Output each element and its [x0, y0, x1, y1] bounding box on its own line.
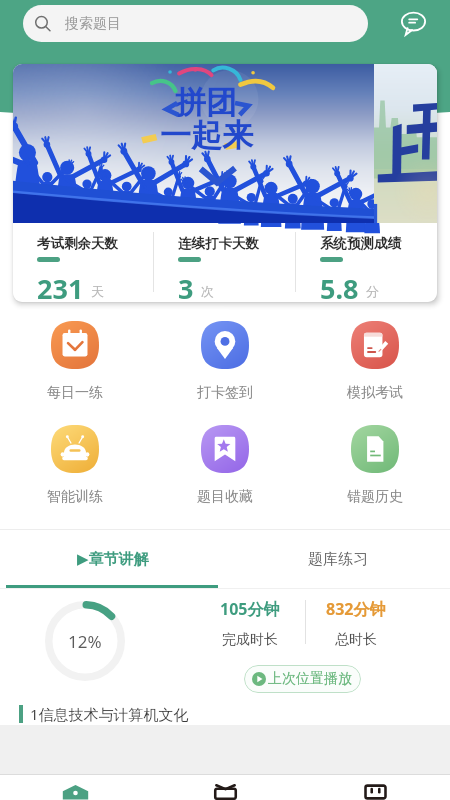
staticText: 次: [201, 283, 214, 299]
staticText: 考试剩余天数: [37, 235, 118, 252]
button[interactable]: 考试剩余天数: [13, 223, 153, 302]
staticText: 5.8: [320, 270, 359, 302]
button[interactable]: 智能训练: [0, 425, 150, 506]
button[interactable]: 1信息技术与计算机文化: [10, 703, 440, 725]
staticText: 题库练习: [308, 550, 368, 569]
button[interactable]: Courses: [150, 775, 300, 800]
button[interactable]: Profile: [300, 775, 450, 800]
button[interactable]: ▶章节讲解: [0, 530, 225, 588]
staticText: 题目收藏: [197, 488, 253, 506]
button[interactable]: 题库练习: [225, 530, 450, 588]
staticText: 总时长: [335, 631, 377, 649]
staticText: 3: [178, 270, 194, 302]
button[interactable]: 错题历史: [300, 425, 450, 506]
button[interactable]: 连续打卡天数: [154, 223, 295, 302]
staticText: 完成时长: [222, 631, 278, 649]
staticText: 231: [37, 270, 84, 302]
button[interactable]: Home: [0, 775, 150, 800]
staticText: 拼团: [175, 83, 237, 122]
staticText: 105分钟: [220, 598, 280, 620]
staticText: 智能训练: [47, 488, 103, 506]
staticText: 一起来: [160, 116, 253, 155]
button[interactable]: Messages: [398, 8, 428, 38]
button[interactable]: 打卡签到: [150, 321, 300, 402]
button[interactable]: 搜索题目: [23, 5, 368, 42]
staticText: 天: [91, 283, 104, 299]
button[interactable]: 上次位置播放: [244, 665, 361, 693]
staticText: 832分钟: [326, 598, 386, 620]
staticText: 12%: [68, 630, 102, 653]
staticText: 错题历史: [347, 488, 403, 506]
staticText: 连续打卡天数: [178, 235, 259, 252]
staticText: 模拟考试: [347, 384, 403, 402]
button[interactable]: 模拟考试: [300, 321, 450, 402]
staticText: 上次位置播放: [268, 670, 352, 688]
staticText: 打卡签到: [197, 384, 253, 402]
staticText: 系统预测成绩: [320, 235, 401, 252]
staticText: 搜索题目: [65, 15, 121, 33]
staticText: 1信息技术与计算机文化: [30, 704, 189, 724]
button[interactable]: 题目收藏: [150, 425, 300, 506]
staticText: 每日一练: [47, 384, 103, 402]
staticText: ▶章节讲解: [77, 550, 149, 569]
button[interactable]: 系统预测成绩: [296, 223, 437, 302]
button[interactable]: 每日一练: [0, 321, 150, 402]
staticText: 分: [366, 283, 379, 299]
